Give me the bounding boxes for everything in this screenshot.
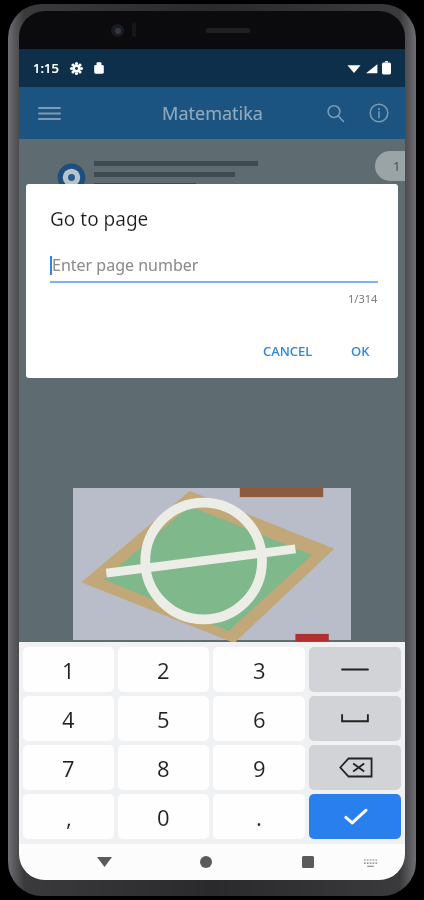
- button[interactable]: Space: [309, 696, 401, 741]
- button[interactable]: Recent apps: [293, 847, 323, 877]
- staticText: 8: [157, 753, 170, 783]
- staticText: CANCEL: [263, 342, 313, 360]
- button[interactable]: CANCEL: [255, 334, 321, 368]
- button[interactable]: .: [213, 794, 305, 839]
- staticText: 1: [62, 655, 75, 685]
- button[interactable]: Home: [191, 847, 221, 877]
- staticText: 2: [157, 655, 170, 685]
- button[interactable]: 8: [118, 745, 209, 790]
- button[interactable]: Minus: [309, 647, 401, 692]
- staticText: 1:15: [33, 59, 59, 77]
- button[interactable]: Search: [313, 91, 357, 135]
- staticText: 4: [62, 704, 75, 734]
- button[interactable]: 2: [118, 647, 209, 692]
- button[interactable]: 6: [213, 696, 305, 741]
- staticText: 1: [393, 157, 401, 175]
- staticText: Matematika: [162, 101, 263, 126]
- button[interactable]: Back: [89, 847, 119, 877]
- staticText: 6: [253, 704, 266, 734]
- button[interactable]: 1: [23, 647, 114, 692]
- button[interactable]: 4: [23, 696, 114, 741]
- button[interactable]: 9: [213, 745, 305, 790]
- button[interactable]: Keyboard switch: [357, 849, 383, 875]
- staticText: 1/314: [348, 291, 378, 306]
- button[interactable]: 3: [213, 647, 305, 692]
- button[interactable]: 0: [118, 794, 209, 839]
- button[interactable]: 7: [23, 745, 114, 790]
- button[interactable]: ,: [23, 794, 114, 839]
- button[interactable]: Enter: [309, 794, 401, 839]
- staticText: OK: [351, 342, 370, 360]
- staticText: 0: [157, 802, 170, 832]
- button[interactable]: 1: [375, 151, 405, 181]
- staticText: Enter page number: [52, 254, 199, 276]
- staticText: Go to page: [50, 206, 149, 232]
- staticText: 7: [62, 753, 75, 783]
- button[interactable]: About: [357, 91, 401, 135]
- staticText: .: [256, 802, 262, 832]
- button[interactable]: OK: [343, 334, 378, 368]
- button[interactable]: Backspace: [309, 745, 401, 790]
- staticText: 5: [157, 704, 170, 734]
- staticText: 3: [253, 655, 266, 685]
- button[interactable]: Open navigation menu: [27, 91, 71, 135]
- button[interactable]: 5: [118, 696, 209, 741]
- staticText: ,: [66, 802, 72, 832]
- staticText: 9: [253, 753, 266, 783]
